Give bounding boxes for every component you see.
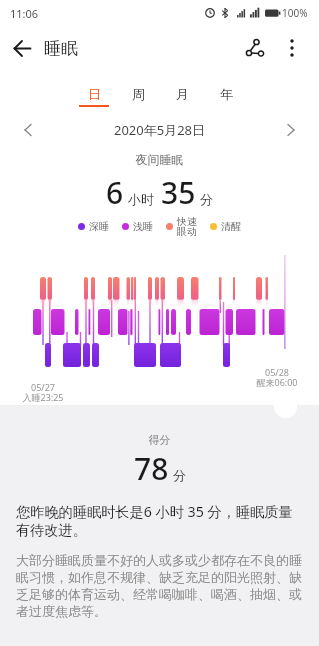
staticText: 11:06 (10, 6, 39, 21)
button[interactable] (16, 118, 40, 142)
staticText: 浅睡 (133, 220, 153, 233)
button[interactable] (0, 26, 44, 70)
staticText: 夜间睡眠 (0, 152, 319, 167)
staticText: 大部分睡眠质量不好的人或多或少都存在不良的睡眠习惯，如作息不规律、缺乏充足的阳光… (16, 552, 303, 620)
button[interactable]: 月 (160, 86, 204, 112)
staticText: 月 (176, 86, 189, 102)
staticText: 睡眠 (44, 38, 78, 59)
staticText: 小时 (128, 191, 154, 207)
staticText: 快速 眼动 (177, 215, 197, 238)
button[interactable]: 日 (72, 86, 116, 112)
staticText: 分 (200, 191, 213, 207)
staticText: 6 (106, 172, 124, 213)
staticText: 日 (88, 86, 101, 102)
staticText: 年 (220, 86, 233, 102)
staticText: 05/28 醒来06:00 (256, 366, 298, 389)
button[interactable]: 周 (116, 86, 160, 112)
staticText: 深睡 (89, 220, 109, 233)
staticText: 05/27 入睡23:25 (22, 381, 64, 404)
button[interactable] (235, 28, 275, 68)
staticText: 得分 (0, 433, 319, 447)
staticText: 清醒 (221, 220, 241, 233)
staticText: 您昨晚的睡眠时长是6 小时 35 分，睡眠质量有待改进。 (16, 502, 303, 540)
staticText: 35 (161, 172, 196, 213)
staticText: 分 (173, 467, 186, 483)
button[interactable] (279, 118, 303, 142)
button[interactable]: 年 (204, 86, 248, 112)
staticText: 100% (282, 6, 308, 20)
staticText: 周 (132, 86, 145, 102)
staticText: 78 (134, 448, 169, 489)
button[interactable] (274, 395, 297, 418)
staticText: 2020年5月28日 (114, 121, 206, 139)
button[interactable] (275, 31, 309, 65)
